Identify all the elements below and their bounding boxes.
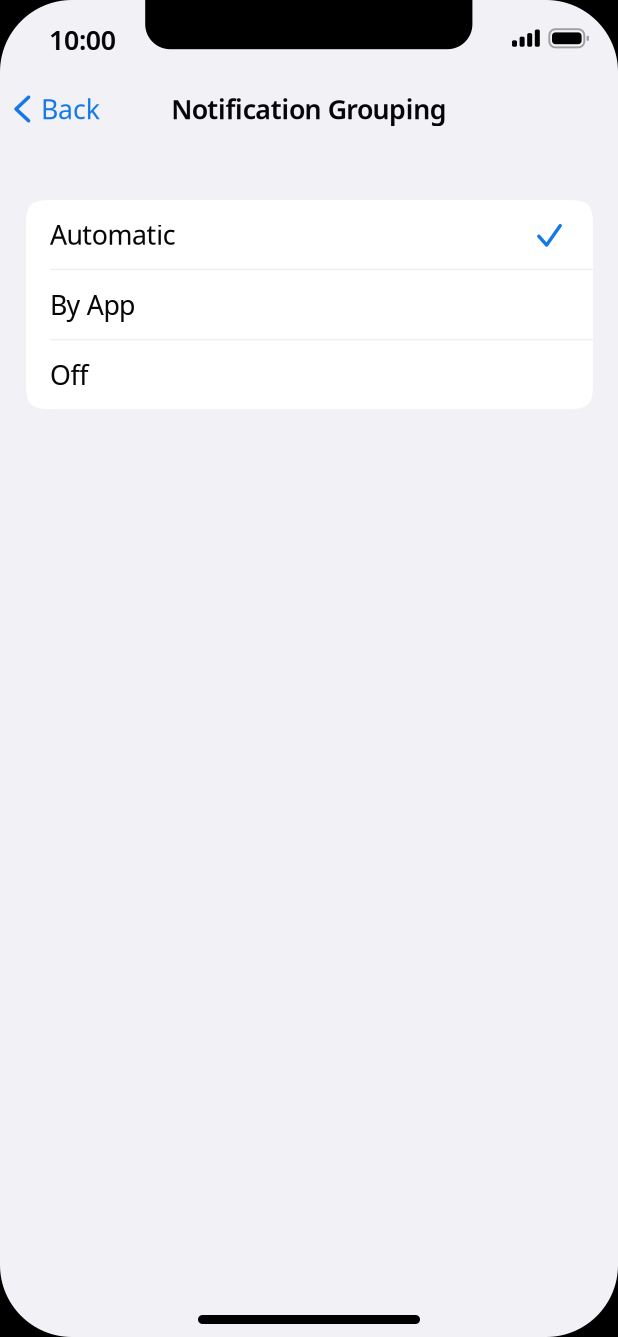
button[interactable]: Automatic — [26, 200, 593, 269]
staticText: Off — [50, 357, 88, 392]
staticText: Automatic — [50, 217, 176, 252]
staticText: 10:00 — [49, 22, 116, 57]
staticText: Back — [41, 91, 100, 127]
button[interactable]: Off — [26, 340, 593, 409]
staticText: By App — [50, 287, 135, 322]
button[interactable]: Back — [0, 82, 112, 136]
button[interactable]: By App — [26, 270, 593, 339]
staticText: Notification Grouping — [171, 91, 447, 127]
